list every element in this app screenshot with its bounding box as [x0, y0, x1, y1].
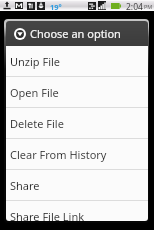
staticText: PM: [144, 3, 153, 10]
staticText: Unzip File: [10, 54, 61, 69]
button[interactable]: Delete File: [6, 108, 148, 138]
staticText: Open File: [10, 85, 59, 100]
staticText: 19°: [50, 2, 62, 12]
staticText: Choose an option: [30, 26, 121, 41]
staticText: Share File Link: [10, 209, 85, 221]
staticText: Delete File: [10, 116, 64, 131]
other: Options: [14, 28, 26, 40]
button[interactable]: Share File Link: [6, 201, 148, 221]
button[interactable]: Clear From History: [6, 139, 148, 169]
staticText: Clear From History: [10, 147, 107, 162]
button[interactable]: Share: [6, 170, 148, 200]
button[interactable]: Options: [6, 21, 148, 46]
button[interactable]: Open File: [6, 77, 148, 107]
staticText: Share: [10, 178, 40, 193]
button[interactable]: Unzip File: [6, 46, 148, 76]
staticText: 2:04: [126, 1, 143, 12]
